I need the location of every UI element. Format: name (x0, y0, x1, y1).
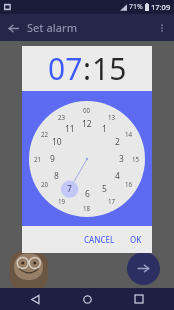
button[interactable]: Back (3, 18, 23, 38)
staticText: 19 (58, 197, 66, 205)
staticText: 00 (83, 106, 91, 114)
button[interactable]: Recents (130, 290, 148, 308)
staticText: 3 (119, 153, 124, 165)
staticText: 1 (102, 123, 107, 135)
button[interactable]: More options (152, 18, 172, 38)
staticText: 21 (34, 155, 42, 163)
staticText: 11 (65, 123, 75, 135)
staticText: 6 (85, 188, 90, 200)
button[interactable]: CANCEL (80, 230, 119, 249)
staticText: 14 (125, 130, 133, 138)
staticText: 8 (54, 170, 59, 182)
staticText: 15 (132, 155, 140, 163)
button[interactable]: 07 (48, 48, 83, 89)
staticText: Set alarm (27, 20, 78, 35)
staticText: 2 (115, 136, 120, 148)
staticText: 4 (115, 170, 120, 182)
button[interactable]: OK (125, 230, 147, 249)
staticText: 18 (83, 204, 91, 212)
staticText: 07 (48, 48, 83, 89)
staticText: 17 (108, 197, 116, 205)
staticText: 7 (67, 183, 72, 195)
staticText: 20 (41, 180, 49, 188)
staticText: CANCEL (84, 234, 115, 245)
staticText: 10 (52, 136, 62, 148)
staticText: : (83, 48, 92, 89)
staticText: 9 (50, 153, 55, 165)
button[interactable]: Home (78, 290, 96, 308)
staticText: 16 (125, 180, 133, 188)
staticText: 22 (41, 130, 49, 138)
staticText: 17:09 (151, 2, 171, 12)
staticText: 15 (92, 48, 127, 89)
staticText: 12 (82, 118, 92, 130)
button[interactable]: 12 (29, 101, 145, 217)
staticText: 23 (58, 113, 66, 121)
button[interactable]: 15 (92, 48, 127, 89)
staticText: OK (130, 234, 142, 245)
staticText: 13 (108, 113, 116, 121)
staticText: 71% (129, 2, 143, 12)
staticText: 5 (102, 183, 107, 195)
button[interactable]: Back (26, 290, 44, 308)
button[interactable]: Next (127, 252, 160, 285)
